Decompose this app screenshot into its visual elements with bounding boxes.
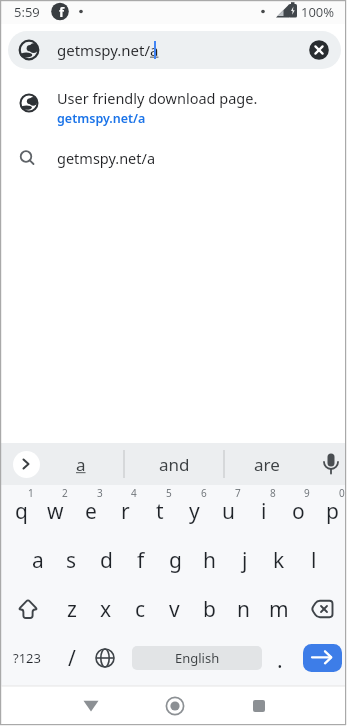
button[interactable] xyxy=(1,81,345,133)
staticText: k xyxy=(273,546,285,575)
button[interactable]: y xyxy=(177,487,212,536)
button[interactable] xyxy=(311,449,345,479)
staticText: 5:59 xyxy=(14,3,40,21)
staticText: getmspy.net/a xyxy=(57,40,159,60)
staticText: User friendly download page. xyxy=(57,88,258,108)
staticText: 5 xyxy=(166,486,172,500)
staticText: x xyxy=(100,595,112,624)
staticText: 4 xyxy=(131,486,137,500)
button[interactable]: e xyxy=(73,487,108,536)
staticText: f xyxy=(137,546,145,575)
button[interactable]: x xyxy=(88,585,123,634)
button[interactable]: p xyxy=(315,487,350,536)
staticText: f xyxy=(59,3,65,21)
staticText: a xyxy=(32,546,44,575)
staticText: 3 xyxy=(97,486,103,500)
staticText: l xyxy=(311,546,317,575)
button[interactable]: r xyxy=(108,487,143,536)
button[interactable] xyxy=(13,451,40,478)
button[interactable]: w xyxy=(38,487,73,536)
staticText: i xyxy=(261,497,267,526)
button[interactable] xyxy=(8,31,341,69)
staticText: y xyxy=(189,497,200,526)
button[interactable]: g xyxy=(158,536,193,585)
staticText: c xyxy=(135,595,146,624)
staticText: w xyxy=(47,497,64,526)
staticText: q xyxy=(15,497,28,526)
staticText: 2 xyxy=(62,486,68,500)
button[interactable] xyxy=(63,688,119,724)
button[interactable]: q xyxy=(4,487,39,536)
staticText: 6 xyxy=(201,486,207,500)
button[interactable] xyxy=(1,133,345,183)
staticText: s xyxy=(66,546,77,575)
button[interactable]: z xyxy=(54,585,89,634)
button[interactable]: h xyxy=(192,536,227,585)
button[interactable] xyxy=(303,644,342,672)
button[interactable]: / xyxy=(52,643,92,673)
button[interactable]: a xyxy=(46,449,116,479)
button[interactable]: o xyxy=(281,487,316,536)
staticText: 0 xyxy=(339,486,345,500)
staticText: ?123 xyxy=(13,649,41,667)
staticText: u xyxy=(222,497,235,526)
button[interactable]: n xyxy=(226,585,261,634)
button[interactable] xyxy=(231,688,287,724)
button[interactable]: i xyxy=(246,487,281,536)
button[interactable]: k xyxy=(261,536,296,585)
button[interactable]: m xyxy=(261,585,296,634)
button[interactable]: . xyxy=(262,645,298,675)
staticText: m xyxy=(269,595,289,624)
staticText: getmspy.net/a xyxy=(57,110,146,127)
staticText: 9 xyxy=(304,486,310,500)
button[interactable]: j xyxy=(227,536,262,585)
button[interactable] xyxy=(88,643,122,673)
button[interactable] xyxy=(297,585,345,634)
button[interactable]: English xyxy=(132,646,262,670)
staticText: z xyxy=(67,595,77,624)
button[interactable]: l xyxy=(296,536,331,585)
button[interactable]: ?123 xyxy=(5,643,49,673)
staticText: e xyxy=(85,497,97,526)
button[interactable] xyxy=(147,688,203,724)
staticText: . xyxy=(277,646,283,675)
staticText: are xyxy=(254,453,280,476)
staticText: p xyxy=(326,497,339,526)
button[interactable] xyxy=(4,585,53,634)
staticText: b xyxy=(203,595,216,624)
staticText: getmspy.net/a xyxy=(57,148,156,168)
staticText: j xyxy=(242,546,248,575)
staticText: v xyxy=(169,595,180,624)
button[interactable]: and xyxy=(126,449,222,479)
staticText: t xyxy=(156,497,164,526)
button[interactable]: v xyxy=(157,585,192,634)
button[interactable]: f xyxy=(123,536,158,585)
staticText: r xyxy=(121,497,130,526)
button[interactable]: t xyxy=(142,487,177,536)
staticText: 7 xyxy=(235,486,241,500)
button[interactable]: d xyxy=(89,536,124,585)
button[interactable]: a xyxy=(20,536,55,585)
staticText: 8 xyxy=(270,486,276,500)
staticText: o xyxy=(292,497,305,526)
staticText: d xyxy=(100,546,113,575)
staticText: and xyxy=(159,453,190,476)
button[interactable]: u xyxy=(211,487,246,536)
staticText: 1 xyxy=(28,486,34,500)
staticText: h xyxy=(203,546,216,575)
staticText: / xyxy=(68,644,76,673)
button[interactable]: s xyxy=(54,536,89,585)
button[interactable]: c xyxy=(123,585,158,634)
button[interactable]: b xyxy=(192,585,227,634)
staticText: a xyxy=(76,453,86,476)
button[interactable]: are xyxy=(226,449,308,479)
staticText: g xyxy=(169,546,182,575)
staticText: n xyxy=(237,595,250,624)
staticText: English xyxy=(175,649,220,667)
staticText: 100% xyxy=(301,3,335,21)
